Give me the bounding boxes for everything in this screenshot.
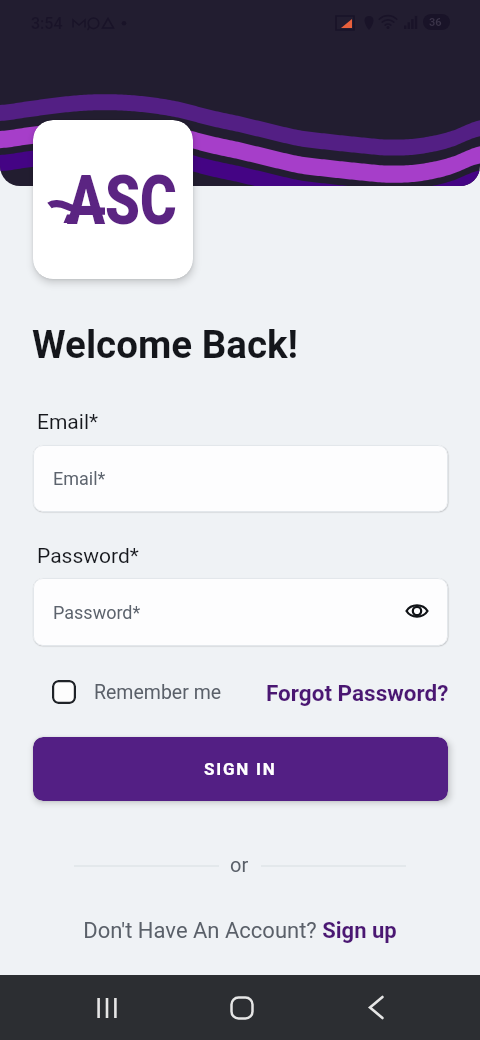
staticText: Password* [37, 544, 139, 569]
button[interactable]: SIGN IN [33, 737, 448, 801]
staticText: or [230, 853, 249, 876]
button[interactable]: Show password [397, 591, 437, 631]
button[interactable]: Don't Have An Account? Sign up [60, 915, 420, 947]
staticText: Remember me [94, 681, 222, 704]
staticText: Welcome Back! [32, 322, 299, 367]
staticText: 36 [429, 16, 442, 29]
staticText: Password* [53, 602, 141, 623]
button[interactable]: Password* [33, 578, 448, 646]
button[interactable]: ASC logo [33, 120, 193, 279]
staticText: 3:54 [31, 14, 63, 33]
staticText: Email* [53, 468, 106, 489]
staticText: Email* [37, 410, 99, 435]
staticText: ASC [67, 160, 177, 241]
staticText: Don't Have An Account? Sign up [83, 918, 397, 944]
button[interactable]: Remember me [52, 680, 76, 704]
staticText: SIGN IN [204, 759, 277, 779]
button[interactable]: Email* [33, 445, 448, 512]
staticText: Forgot Password? [266, 680, 449, 706]
button[interactable]: Forgot Password? [266, 676, 450, 704]
